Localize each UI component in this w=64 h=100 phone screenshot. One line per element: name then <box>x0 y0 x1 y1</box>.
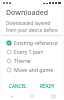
button[interactable]: Home <box>22 93 43 100</box>
staticText: CANCEL <box>9 83 27 89</box>
button[interactable]: Existing reference <box>2 38 62 47</box>
staticText: Theme <box>14 57 31 64</box>
button[interactable]: Recents <box>43 93 64 100</box>
button[interactable]: CANCEL <box>7 82 29 90</box>
staticText: from your device before <box>6 27 58 33</box>
staticText: Existing reference <box>14 39 58 46</box>
button[interactable]: Move and game <box>2 65 62 74</box>
staticText: Downloaded layered cards is now directly <box>6 20 58 26</box>
staticText: READY <box>40 83 55 89</box>
staticText: Downloaded cards <box>6 8 58 18</box>
button[interactable]: Every 1 part <box>2 47 62 56</box>
button[interactable]: Back <box>0 93 22 100</box>
button[interactable]: Theme <box>2 56 62 65</box>
button[interactable]: READY <box>38 82 57 90</box>
staticText: Every 1 part <box>14 48 44 55</box>
staticText: Move and game <box>14 66 54 73</box>
